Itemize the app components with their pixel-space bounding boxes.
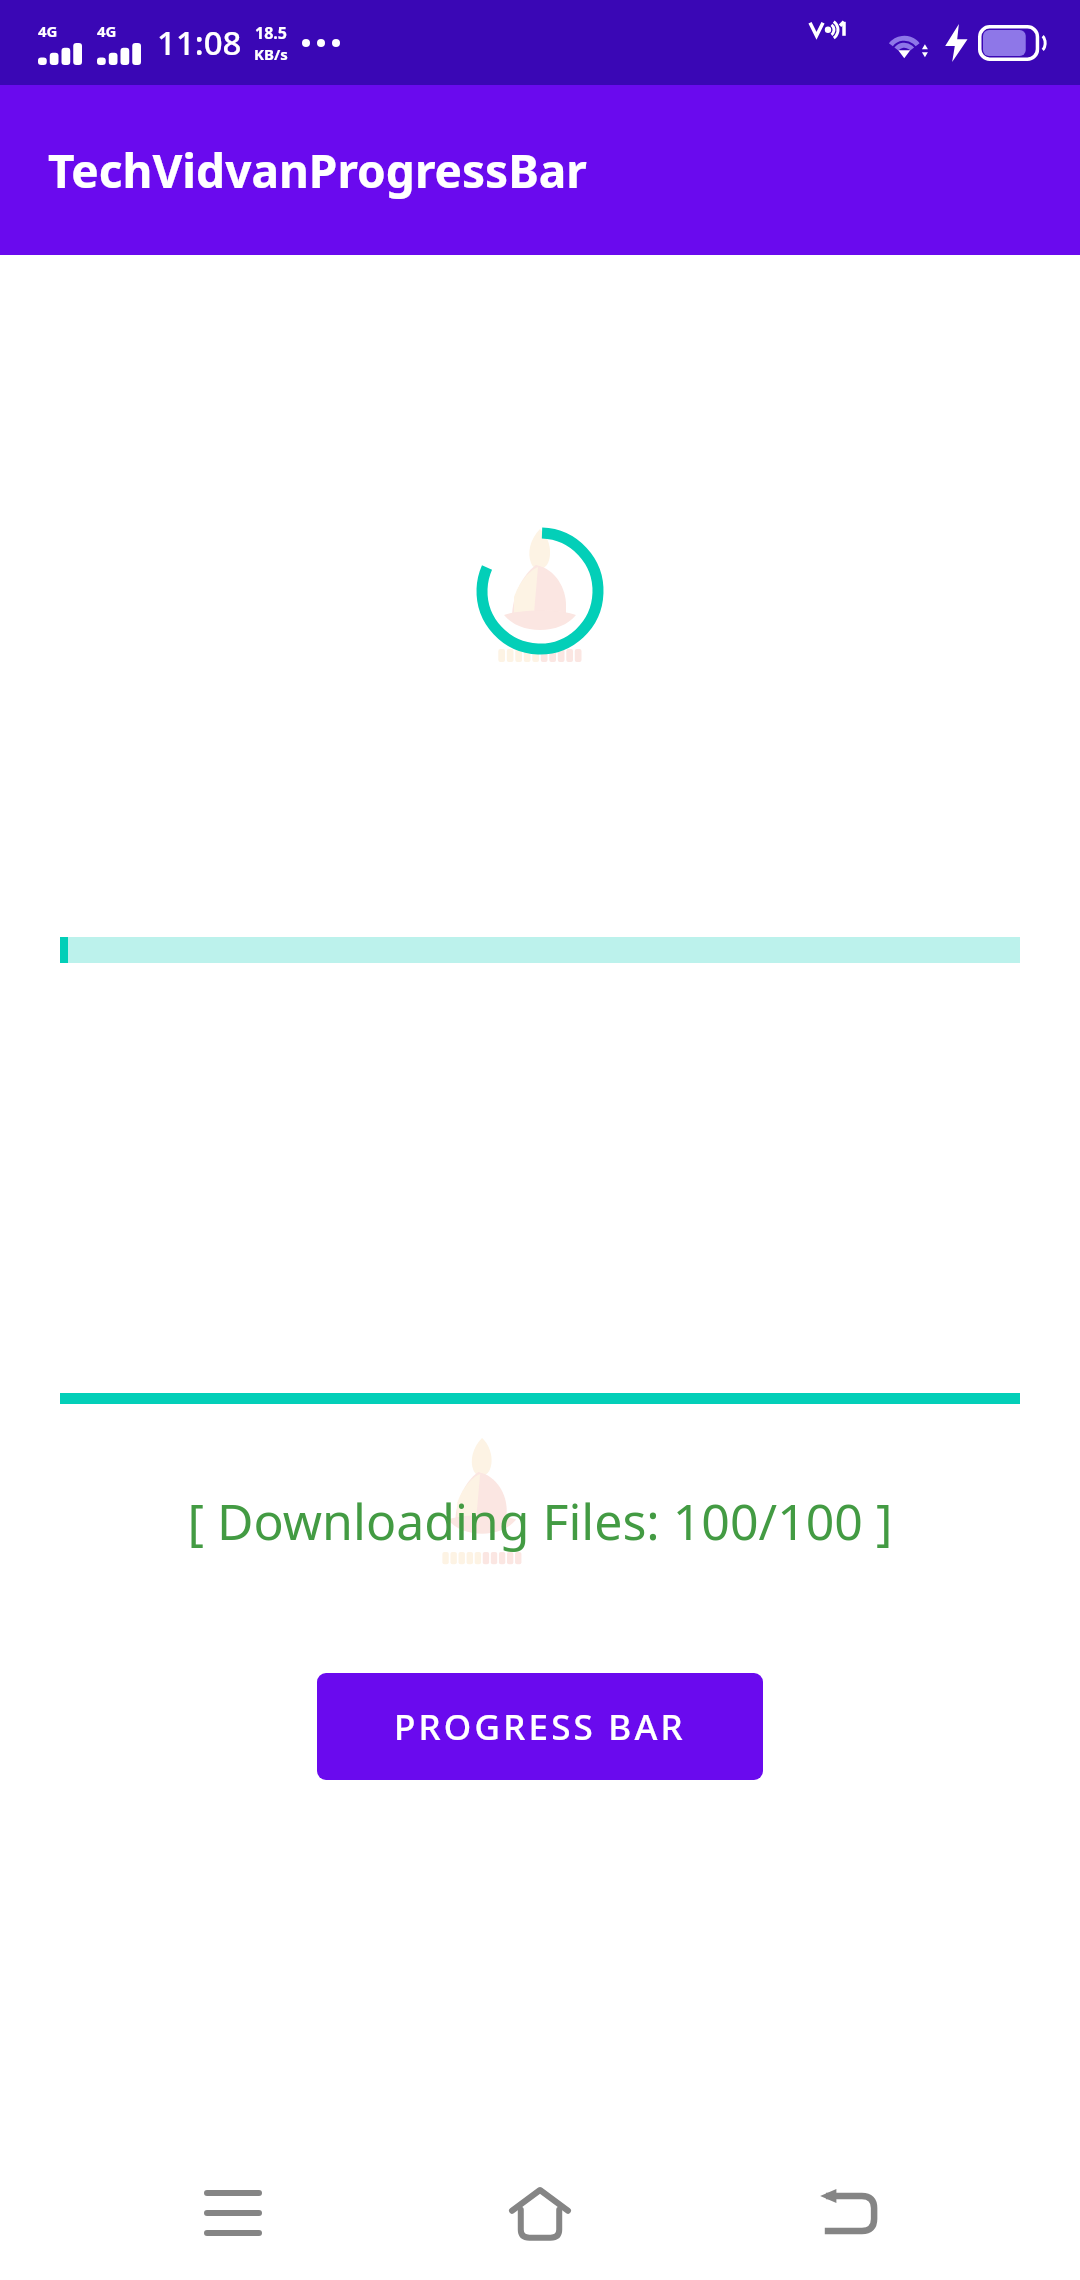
button[interactable] [60, 937, 1020, 963]
button[interactable]: Back [773, 2153, 923, 2273]
staticText: 11:08 [157, 20, 242, 65]
staticText: KB/s [254, 44, 288, 64]
staticText: 4G [97, 21, 117, 41]
staticText: 4G [38, 21, 58, 41]
button[interactable]: Home [465, 2153, 615, 2273]
staticText: [ Downloading Files: 100/100 ] [0, 1487, 1080, 1555]
staticText: 18.5 [255, 22, 287, 44]
staticText: TechVidvanProgressBar [48, 139, 587, 202]
button[interactable]: Recent apps [158, 2153, 308, 2273]
staticText: PROGRESS BAR [394, 1703, 686, 1751]
button[interactable]: PROGRESS BAR [317, 1673, 763, 1780]
